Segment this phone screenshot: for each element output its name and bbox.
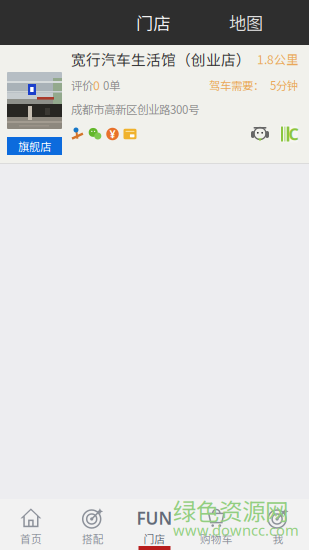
staticText: ¥ <box>109 127 115 141</box>
button[interactable]: 首页 <box>0 499 62 550</box>
staticText: 驾车需要： 5分钟 <box>209 77 298 93</box>
button[interactable]: 购物车 <box>185 499 247 550</box>
staticText: 评价 <box>71 77 93 93</box>
button[interactable]: 我 <box>247 499 309 550</box>
staticText: 搭配 <box>82 531 104 546</box>
staticText: www.downcc.com <box>173 520 299 540</box>
button[interactable]: 门店 <box>113 0 193 45</box>
staticText: 1.8公里 <box>257 50 298 68</box>
staticText: 0 <box>93 76 100 94</box>
staticText: 首页 <box>20 531 42 546</box>
staticText: 地图 <box>229 10 263 35</box>
staticText: 我 <box>273 531 284 546</box>
staticText: 旗舰店 <box>18 138 51 154</box>
staticText: 成都市高新区创业路300号 <box>71 101 199 117</box>
staticText: 宽行汽车生活馆（创业店） <box>71 48 251 70</box>
staticText: FUN <box>136 506 172 529</box>
button[interactable]: 旗舰店 <box>0 45 309 164</box>
staticText: 绿色资源网 <box>173 493 288 527</box>
staticText: 0单 <box>100 77 120 93</box>
button[interactable]: 地图 <box>206 0 286 45</box>
staticText: 门店 <box>136 10 170 35</box>
staticText: C <box>288 123 298 145</box>
staticText: 购物车 <box>200 531 233 546</box>
staticText: 门店 <box>143 531 165 546</box>
button[interactable]: 搭配 <box>62 499 124 550</box>
button[interactable]: FUN <box>124 499 185 550</box>
